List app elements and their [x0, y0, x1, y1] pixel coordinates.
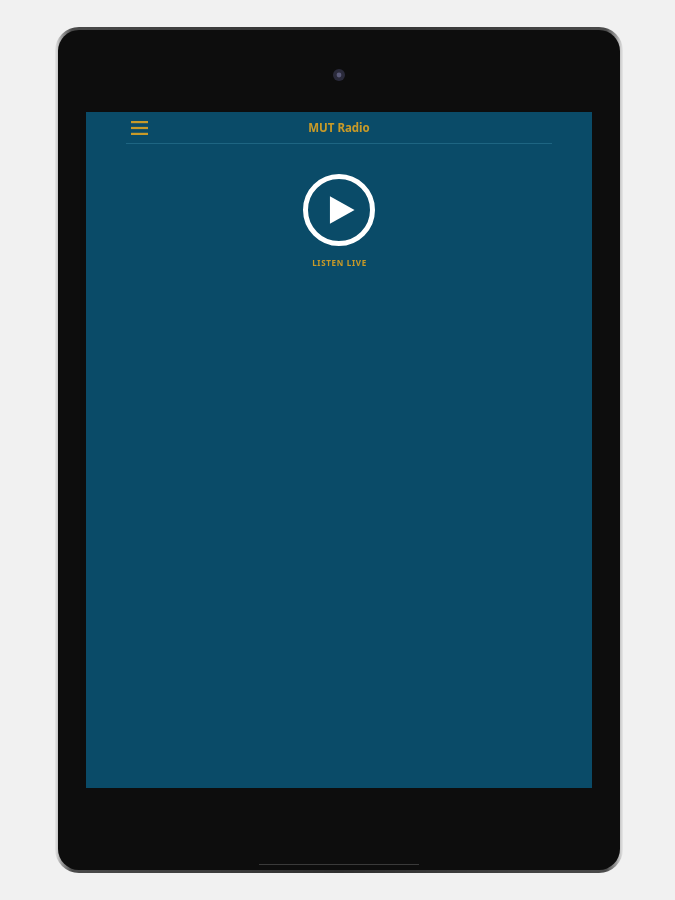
- button[interactable]: LISTEN LIVE: [308, 255, 371, 270]
- button[interactable]: Open navigation menu: [124, 114, 154, 142]
- staticText: MUT Radio: [308, 120, 370, 136]
- button[interactable]: Play live radio stream: [300, 171, 378, 249]
- staticText: LISTEN LIVE: [312, 257, 367, 268]
